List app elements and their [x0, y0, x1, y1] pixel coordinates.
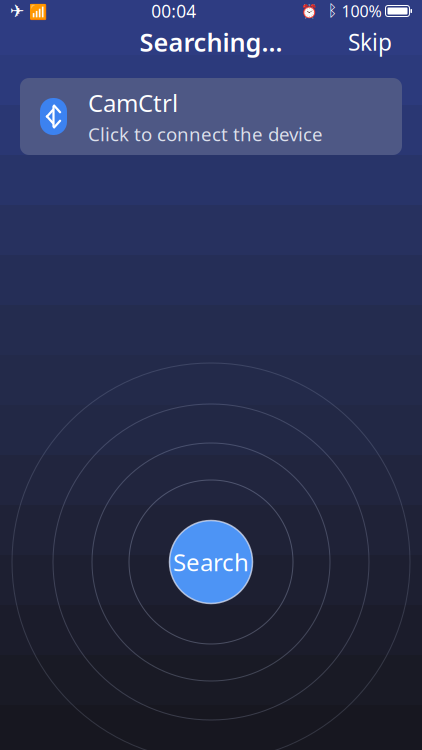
staticText: ⏰: [300, 3, 317, 19]
button[interactable]: Search: [167, 518, 255, 606]
staticText: Searching...: [139, 25, 282, 59]
staticText: 00:04: [151, 0, 196, 22]
staticText: Click to connect the device: [88, 121, 323, 146]
staticText: Search: [173, 546, 249, 578]
staticText: 100%: [337, 0, 381, 22]
staticText: ✈: [10, 1, 25, 21]
staticText: CamCtrl: [88, 87, 178, 119]
staticText: 📶: [25, 1, 47, 21]
staticText: ᛒ: [317, 3, 337, 19]
button[interactable]: Skip: [336, 19, 404, 65]
button[interactable]: CamCtrl: [20, 78, 402, 155]
staticText: Skip: [348, 27, 392, 57]
